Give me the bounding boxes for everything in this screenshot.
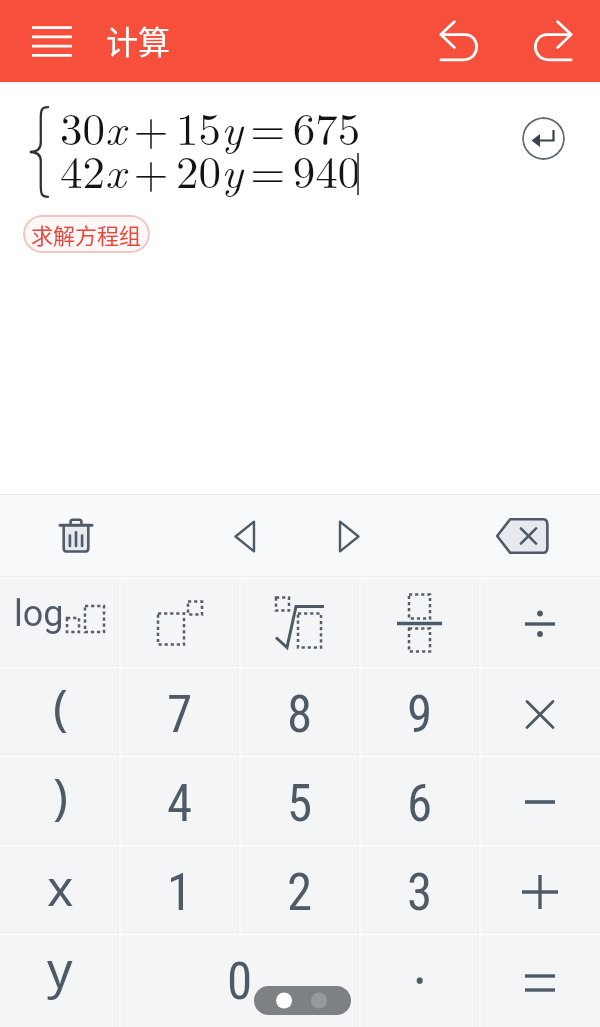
button[interactable]: ) (0, 756, 120, 845)
button[interactable]: 0 (120, 934, 360, 1023)
staticText: ) (53, 761, 68, 829)
button[interactable]: Square root (240, 578, 360, 667)
button[interactable]: Page indicator (254, 986, 351, 1015)
staticText: 4 (167, 774, 193, 834)
staticText: y (47, 935, 73, 1003)
staticText: 1 (167, 863, 193, 923)
button[interactable]: Menu (10, 0, 94, 82)
staticText: 7 (167, 685, 193, 745)
button[interactable]: 1 (120, 845, 240, 934)
staticText: 0 (227, 952, 253, 1012)
staticText: 9 (407, 685, 433, 745)
staticText: 3 (407, 863, 433, 923)
button[interactable]: Redo (512, 0, 592, 82)
button[interactable]: Minus (480, 756, 600, 845)
button[interactable]: Enter (522, 117, 565, 160)
button[interactable]: 2 (240, 845, 360, 934)
staticText: 计算 (106, 17, 171, 63)
button[interactable]: · (360, 934, 480, 1023)
button[interactable]: 8 (240, 667, 360, 756)
button[interactable]: 5 (240, 756, 360, 845)
button[interactable]: 4 (120, 756, 240, 845)
button[interactable]: 7 (120, 667, 240, 756)
button[interactable]: 6 (360, 756, 480, 845)
button[interactable]: Logarithm (0, 578, 120, 667)
button[interactable]: 9 (360, 667, 480, 756)
button[interactable]: y (0, 934, 120, 1023)
staticText: 2 (287, 863, 313, 923)
button[interactable]: ( (0, 667, 120, 756)
staticText: 30x + 15y = 675 42x + 20y = 940 (60, 94, 361, 201)
staticText: 求解方程组 (31, 218, 142, 250)
button[interactable]: Plus (480, 845, 600, 934)
staticText: log (14, 593, 64, 635)
staticText: · (413, 945, 427, 1013)
button[interactable]: Undo (420, 0, 500, 82)
button[interactable]: Divide (480, 578, 600, 667)
button[interactable]: Multiply (480, 667, 600, 756)
button[interactable]: Clear (32, 494, 120, 578)
button[interactable]: Power (120, 578, 240, 667)
button[interactable]: Cursor right (308, 494, 388, 578)
button[interactable]: Backspace (478, 494, 566, 578)
staticText: 8 (287, 685, 313, 745)
button[interactable]: Cursor left (205, 494, 285, 578)
button[interactable]: 求解方程组 (23, 215, 150, 253)
staticText: ( (53, 672, 68, 740)
button[interactable]: Equals (480, 934, 600, 1023)
staticText: x (47, 853, 74, 921)
staticText: 5 (287, 774, 313, 834)
button[interactable]: 3 (360, 845, 480, 934)
button[interactable]: x (0, 845, 120, 934)
button[interactable]: Fraction (360, 578, 480, 667)
staticText: 6 (407, 774, 433, 834)
